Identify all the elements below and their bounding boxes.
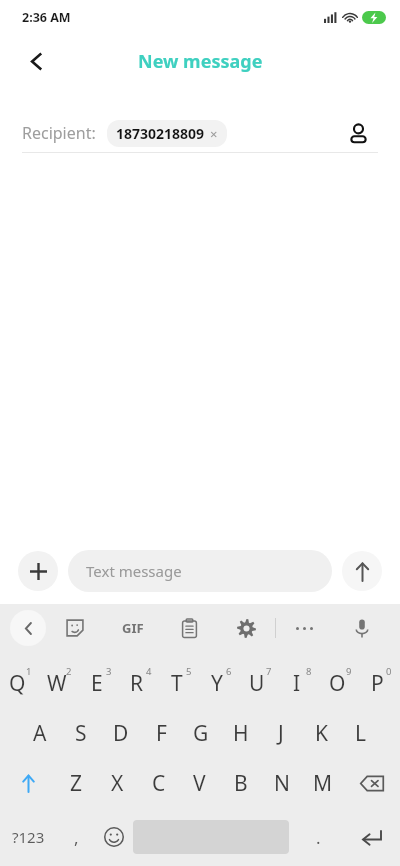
staticText: M <box>313 769 333 798</box>
staticText: 7 <box>266 665 272 678</box>
staticText: 0 <box>386 665 392 678</box>
button[interactable]: J <box>261 708 301 758</box>
staticText: 18730218809 <box>116 124 205 143</box>
button[interactable]: O <box>320 652 360 708</box>
staticText: E <box>91 669 103 698</box>
staticText: H <box>233 719 249 748</box>
staticText: B <box>234 769 248 798</box>
staticText: K <box>315 719 328 748</box>
staticText: D <box>113 719 129 748</box>
staticText: O <box>329 669 346 698</box>
staticText: Q <box>9 669 26 698</box>
staticText: GIF <box>122 619 144 637</box>
button[interactable]: Choose contact <box>338 114 378 152</box>
button[interactable]: Add attachment <box>18 551 58 591</box>
staticText: 9 <box>346 665 352 678</box>
button[interactable]: Text message <box>68 550 332 592</box>
button[interactable]: X <box>97 758 138 808</box>
button[interactable]: Collapse toolbar <box>10 610 46 646</box>
button[interactable]: K <box>301 708 341 758</box>
staticText: ?123 <box>12 827 45 847</box>
button[interactable]: B <box>220 758 261 808</box>
button[interactable]: D <box>101 708 141 758</box>
button[interactable]: Emoji <box>95 808 133 866</box>
staticText: 1 <box>26 665 32 678</box>
button[interactable]: More options <box>276 604 333 652</box>
staticText: 5 <box>186 665 192 678</box>
staticText: G <box>193 719 209 748</box>
button[interactable]: W <box>40 652 80 708</box>
button[interactable]: F <box>141 708 181 758</box>
staticText: 6 <box>226 665 232 678</box>
staticText: . <box>316 826 321 849</box>
button[interactable]: I <box>280 652 320 708</box>
button[interactable]: T <box>160 652 200 708</box>
button[interactable]: Clipboard <box>161 604 218 652</box>
staticText: New message <box>138 49 263 74</box>
button[interactable]: N <box>261 758 302 808</box>
button[interactable]: Shift <box>0 758 56 808</box>
staticText: S <box>75 719 87 748</box>
staticText: , <box>74 826 79 849</box>
staticText: 2:36 AM <box>22 9 71 26</box>
staticText: Z <box>70 769 83 798</box>
button[interactable]: Enter <box>343 808 400 866</box>
staticText: W <box>47 669 67 698</box>
button[interactable]: Back <box>14 39 58 83</box>
staticText: 2 <box>66 665 72 678</box>
staticText: V <box>193 769 206 798</box>
staticText: 4 <box>146 665 152 678</box>
button[interactable]: , <box>57 808 95 866</box>
button[interactable]: R <box>120 652 160 708</box>
button[interactable]: M <box>302 758 343 808</box>
staticText: A <box>33 719 47 748</box>
staticText: R <box>130 669 144 698</box>
staticText: × <box>210 125 218 143</box>
staticText: Text message <box>86 561 182 581</box>
button[interactable]: . <box>293 808 343 866</box>
staticText: L <box>355 719 367 748</box>
button[interactable]: A <box>19 708 60 758</box>
button[interactable]: U <box>240 652 280 708</box>
staticText: J <box>278 719 284 748</box>
button[interactable]: Q <box>0 652 40 708</box>
staticText: C <box>152 769 166 798</box>
button[interactable]: Settings <box>218 604 275 652</box>
staticText: U <box>249 669 265 698</box>
button[interactable]: Stickers <box>46 604 104 652</box>
button[interactable]: H <box>221 708 261 758</box>
staticText: Y <box>211 669 223 698</box>
button[interactable]: Z <box>56 758 97 808</box>
staticText: N <box>274 769 290 798</box>
button[interactable]: Backspace <box>343 758 400 808</box>
staticText: F <box>156 719 167 748</box>
button[interactable]: P <box>360 652 400 708</box>
staticText: 3 <box>106 665 112 678</box>
button[interactable]: 18730218809 <box>107 120 227 147</box>
button[interactable]: C <box>138 758 179 808</box>
staticText: P <box>371 669 384 698</box>
staticText: Recipient: <box>22 122 96 144</box>
staticText: I <box>293 669 301 698</box>
staticText: 8 <box>306 665 312 678</box>
button[interactable]: Y <box>200 652 240 708</box>
button[interactable]: E <box>80 652 120 708</box>
staticText: T <box>171 669 183 698</box>
button[interactable]: ?123 <box>0 808 57 866</box>
button[interactable]: L <box>341 708 381 758</box>
button[interactable]: S <box>60 708 101 758</box>
button[interactable]: G <box>181 708 221 758</box>
button[interactable]: V <box>179 758 220 808</box>
button[interactable]: Send <box>342 551 382 591</box>
staticText: X <box>111 769 124 798</box>
button[interactable]: Voice input <box>333 604 390 652</box>
button[interactable]: GIF <box>104 604 161 652</box>
